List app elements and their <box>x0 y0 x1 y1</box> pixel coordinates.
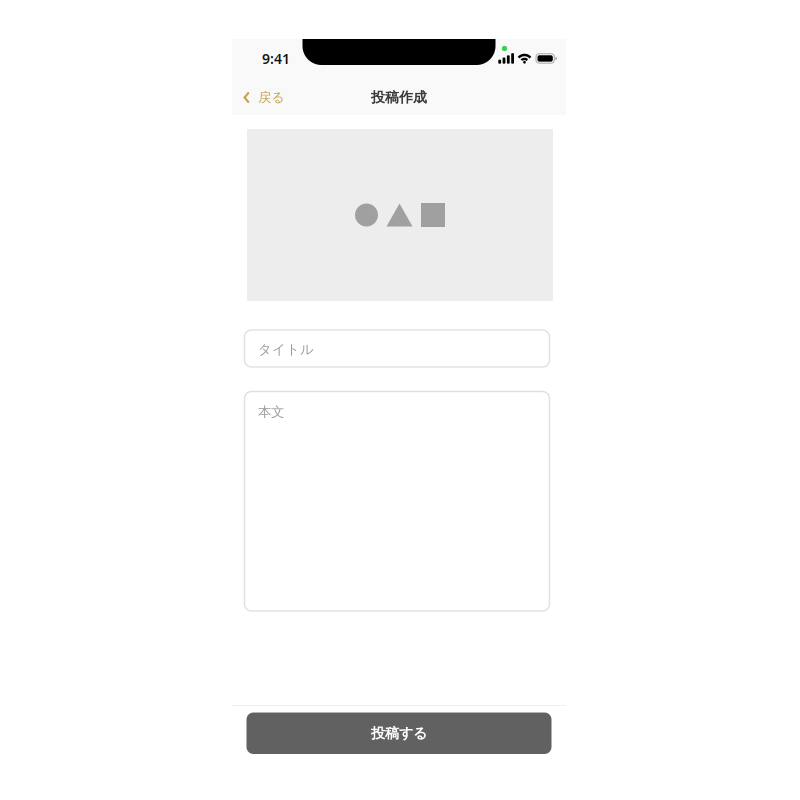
button[interactable]: 戻る <box>232 78 298 117</box>
button[interactable]: タイトル <box>246 330 551 367</box>
button[interactable]: 写真を追加 <box>246 129 552 301</box>
staticText: 投稿作成 <box>371 89 427 106</box>
staticText: 9:41 <box>262 49 290 68</box>
staticText: タイトル <box>258 341 314 358</box>
staticText: 投稿する <box>371 724 427 742</box>
staticText: 戻る <box>258 89 284 106</box>
button[interactable]: 投稿する <box>246 712 551 754</box>
staticText: 本文 <box>258 403 284 420</box>
button[interactable]: 本文 <box>246 391 551 611</box>
